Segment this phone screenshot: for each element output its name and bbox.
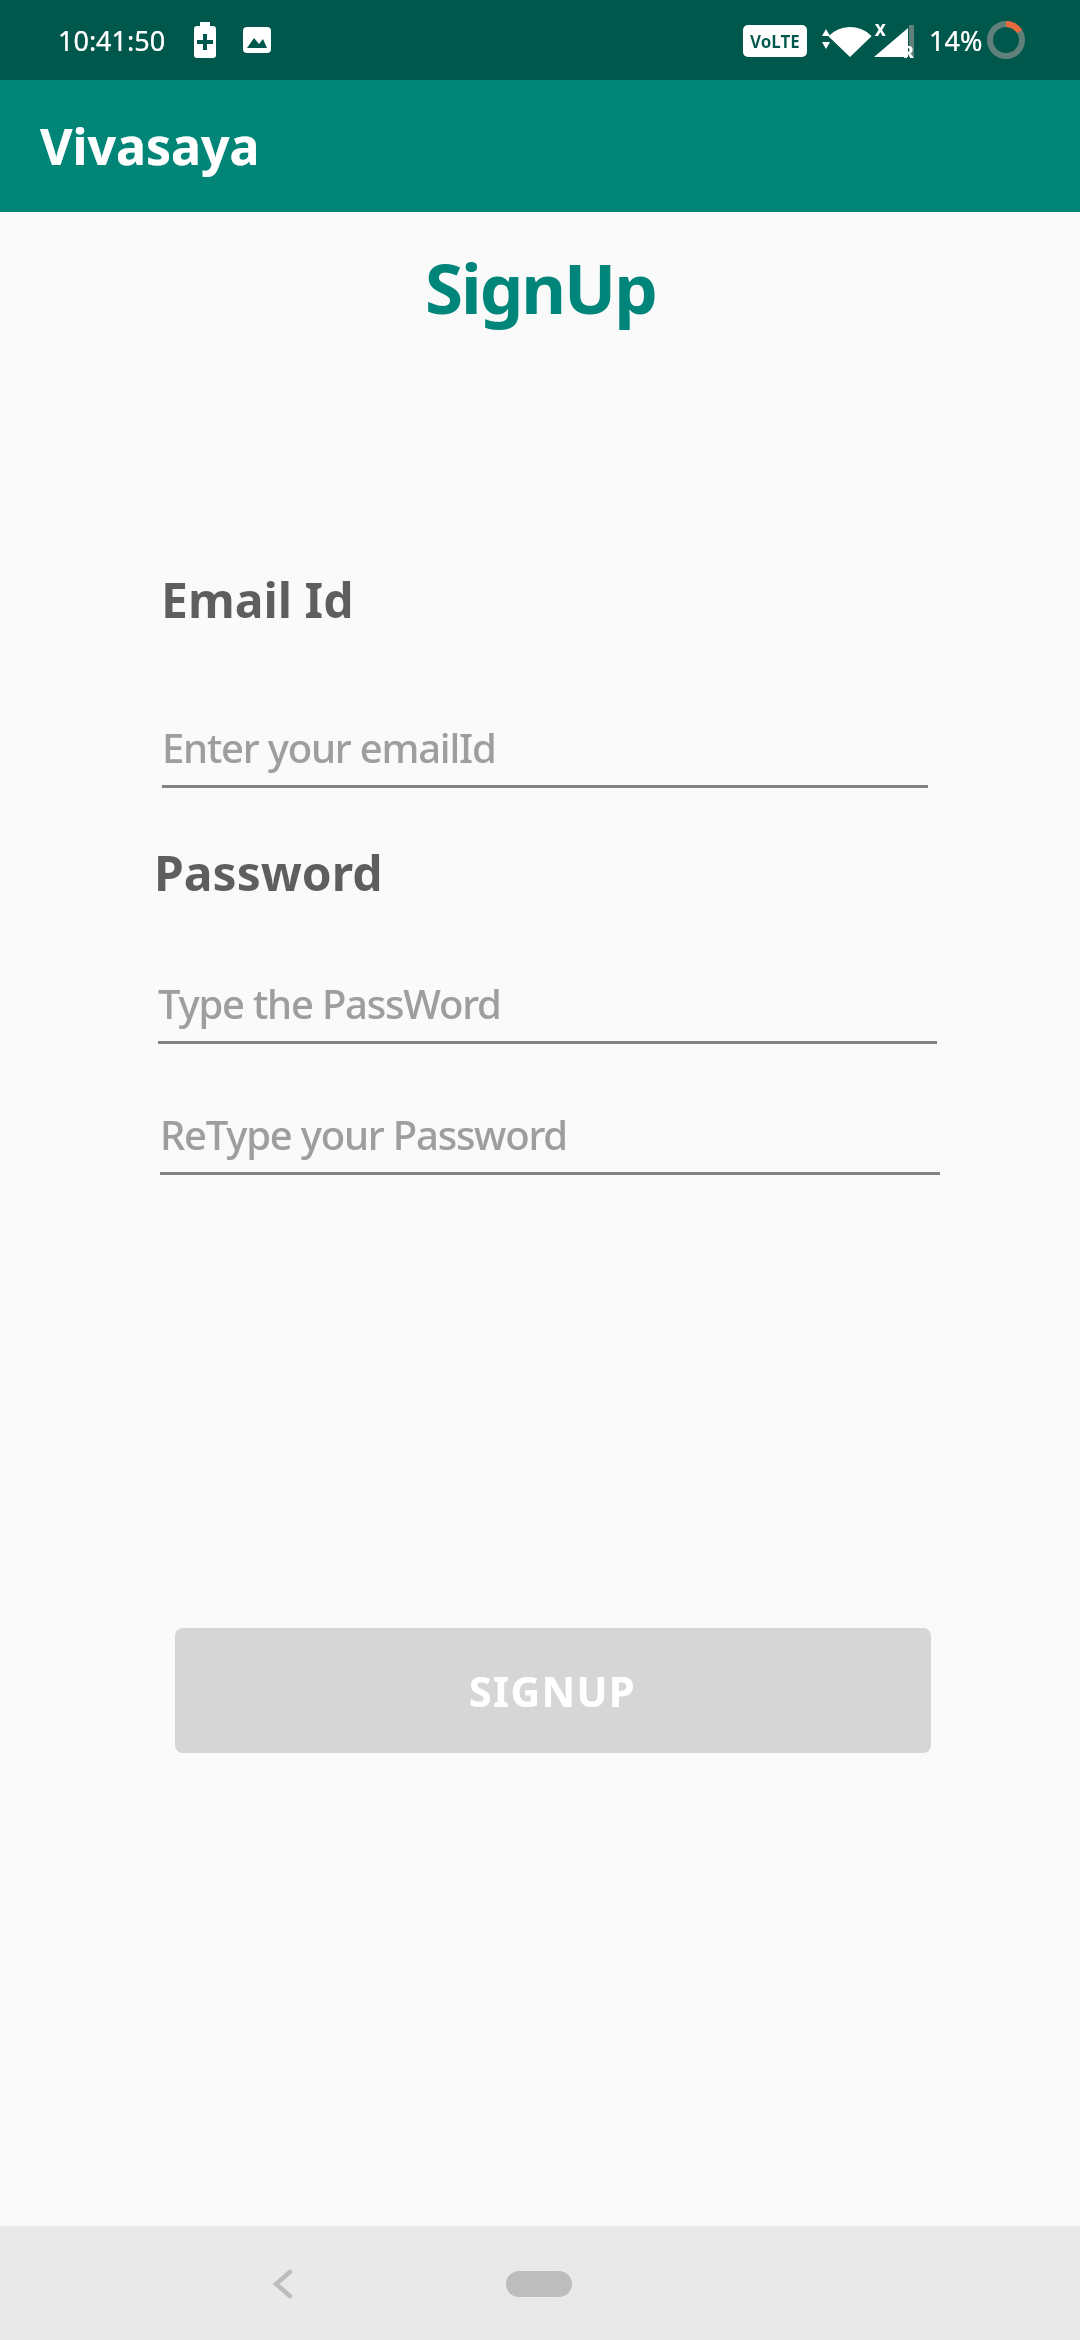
button[interactable]: Enter your emailId xyxy=(162,710,928,788)
button[interactable]: ReType your Password xyxy=(160,1097,940,1175)
staticText: SignUp xyxy=(425,240,656,334)
staticText: VoLTE xyxy=(750,30,800,53)
staticText: Enter your emailId xyxy=(162,720,496,774)
staticText: 10:41:50 xyxy=(58,22,166,59)
staticText: Vivasaya xyxy=(40,112,260,180)
button[interactable]: Type the PassWord xyxy=(158,966,937,1044)
staticText: ReType your Password xyxy=(160,1107,567,1161)
button[interactable] xyxy=(506,2271,572,2297)
staticText: Password xyxy=(154,840,383,905)
button[interactable]: SIGNUP xyxy=(175,1628,931,1753)
button[interactable] xyxy=(258,2258,308,2308)
staticText: Type the PassWord xyxy=(158,976,501,1030)
staticText: 14% xyxy=(929,22,983,59)
staticText: R xyxy=(903,41,914,63)
staticText: X xyxy=(875,19,886,41)
staticText: SIGNUP xyxy=(469,1663,637,1719)
staticText: Email Id xyxy=(161,567,354,632)
